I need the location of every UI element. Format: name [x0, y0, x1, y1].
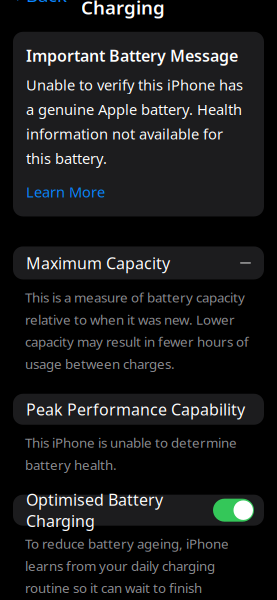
staticText: Optimised Battery Charging [26, 489, 163, 531]
staticText: Back [26, 0, 67, 7]
staticText: Important Battery Message [26, 45, 238, 66]
staticText: Unable to verify this iPhone has a genui… [26, 75, 243, 168]
staticText: This iPhone is unable to determine batte… [25, 434, 237, 474]
button[interactable]: Learn More [26, 180, 105, 203]
staticText: Learn More [26, 182, 105, 201]
staticText: Peak Performance Capability [26, 399, 245, 420]
button[interactable]: Back [6, 0, 75, 13]
staticText: To reduce battery ageing, iPhone learns … [25, 535, 244, 600]
button[interactable]: Optimised Battery Charging [13, 495, 264, 526]
staticText: Battery Health & Charging [81, 0, 234, 20]
button[interactable]: Peak Performance Capability [13, 394, 264, 425]
button[interactable]: Maximum Capacity [13, 246, 264, 279]
staticText: Maximum Capacity [26, 252, 170, 273]
staticText: This is a measure of battery capacity re… [25, 288, 249, 373]
